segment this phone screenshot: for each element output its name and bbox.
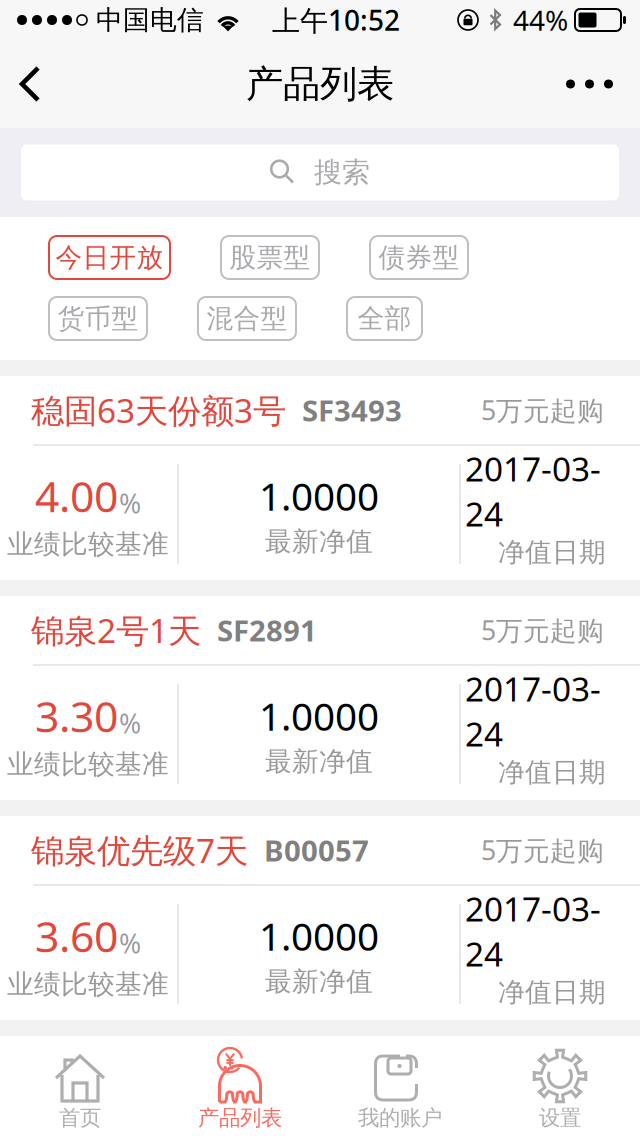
button[interactable]: 返回: [0, 40, 68, 128]
staticText: 锦泉优先级7天: [31, 828, 248, 872]
button[interactable]: 股票型: [221, 236, 319, 279]
staticText: 2017-03-: [465, 886, 601, 931]
staticText: 1.0000: [259, 470, 379, 521]
staticText: 产品列表: [198, 1105, 282, 1131]
staticText: 稳固63天份额3号: [31, 388, 286, 432]
staticText: 44%: [513, 1, 568, 39]
staticText: 设置: [539, 1105, 581, 1131]
staticText: 业绩比较基准: [7, 968, 169, 1001]
button[interactable]: 锦泉优先级7天: [0, 816, 640, 1020]
staticText: 3.60: [35, 907, 118, 964]
staticText: 首页: [59, 1105, 101, 1131]
staticText: 业绩比较基准: [7, 528, 169, 561]
button[interactable]: 全部: [347, 297, 422, 340]
staticText: 产品列表: [246, 61, 394, 107]
staticText: 2017-03-: [465, 666, 601, 711]
staticText: B00057: [264, 830, 369, 869]
button[interactable]: 今日开放: [49, 236, 170, 279]
staticText: 最新净值: [265, 965, 373, 998]
button[interactable]: 债券型: [370, 236, 468, 279]
staticText: 5万元起购: [481, 612, 604, 648]
staticText: 最新净值: [265, 745, 373, 778]
button[interactable]: 更多: [538, 40, 640, 128]
button[interactable]: 搜索: [21, 144, 619, 200]
staticText: 最新净值: [265, 525, 373, 558]
staticText: %: [119, 925, 141, 961]
staticText: 混合型: [206, 302, 287, 335]
staticText: 净值日期: [498, 536, 606, 569]
staticText: 5万元起购: [481, 392, 604, 428]
staticText: 股票型: [229, 241, 310, 274]
staticText: SF3493: [302, 390, 402, 429]
staticText: 上午10:52: [272, 1, 400, 39]
button[interactable]: 设置: [480, 1036, 640, 1136]
button[interactable]: 首页: [0, 1036, 160, 1136]
staticText: 3.30: [35, 687, 118, 744]
staticText: 5万元起购: [481, 832, 604, 868]
staticText: 我的账户: [358, 1105, 442, 1131]
staticText: 全部: [357, 302, 411, 335]
staticText: 1.0000: [259, 910, 379, 961]
staticText: 今日开放: [55, 241, 163, 274]
staticText: 净值日期: [498, 976, 606, 1009]
staticText: 1.0000: [259, 690, 379, 741]
button[interactable]: 货币型: [49, 297, 147, 340]
button[interactable]: 我的账户: [320, 1036, 480, 1136]
staticText: 锦泉2号1天: [31, 608, 201, 652]
button[interactable]: 稳固63天份额3号: [0, 376, 640, 580]
staticText: 货币型: [57, 302, 138, 335]
button[interactable]: 混合型: [198, 297, 296, 340]
button[interactable]: 产品列表: [160, 1036, 320, 1136]
staticText: 24: [465, 711, 503, 756]
staticText: %: [119, 485, 141, 521]
button[interactable]: 锦泉2号1天: [0, 596, 640, 800]
staticText: 业绩比较基准: [7, 748, 169, 781]
staticText: 24: [465, 491, 503, 536]
staticText: 2017-03-: [465, 446, 601, 491]
staticText: 4.00: [35, 467, 118, 524]
staticText: 搜索: [314, 155, 370, 190]
staticText: 债券型: [378, 241, 459, 274]
staticText: %: [119, 705, 141, 741]
staticText: SF2891: [217, 610, 317, 649]
staticText: 24: [465, 931, 503, 976]
staticText: 中国电信: [96, 4, 204, 36]
staticText: 净值日期: [498, 756, 606, 789]
